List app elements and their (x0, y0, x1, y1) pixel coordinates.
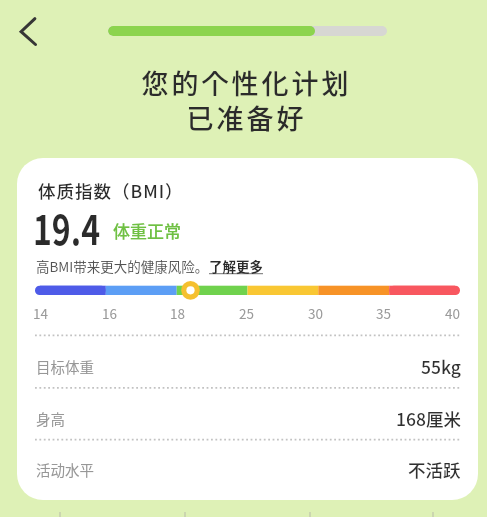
staticText: 55kg (421, 354, 461, 379)
staticText: 已准备好 (3, 98, 487, 137)
staticText: 168厘米 (396, 406, 461, 431)
staticText: 体质指数（BMI） (38, 178, 184, 203)
staticText: 25 (239, 303, 254, 323)
staticText: 身高 (36, 408, 65, 429)
button[interactable]: 活动水平 (36, 456, 461, 482)
staticText: 目标体重 (36, 356, 94, 377)
staticText: 35 (376, 303, 391, 323)
button[interactable] (12, 12, 52, 52)
button[interactable]: 身高 (36, 405, 461, 431)
staticText: 16 (102, 303, 117, 323)
staticText: 不活跃 (408, 457, 461, 482)
staticText: 体重正常 (113, 218, 181, 243)
staticText: 30 (308, 303, 323, 323)
staticText: 活动水平 (36, 459, 94, 480)
staticText: 14 (33, 303, 48, 323)
button[interactable]: 目标体重 (36, 353, 461, 379)
staticText: 18 (170, 303, 185, 323)
button[interactable]: 了解更多 (209, 256, 263, 276)
staticText: 高BMI带来更大的健康风险。 (36, 256, 209, 276)
staticText: 19.4 (33, 197, 100, 256)
staticText: 40 (445, 303, 460, 323)
staticText: 您的个性化计划 (3, 63, 487, 102)
